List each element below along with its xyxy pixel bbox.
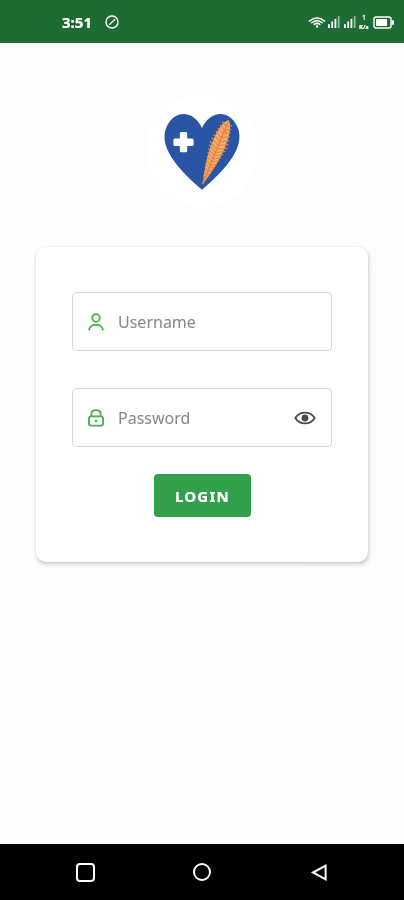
staticText: Username <box>118 311 196 333</box>
button[interactable]: LOGIN <box>154 474 251 517</box>
staticText: 3:51 <box>62 12 92 32</box>
button[interactable]: Show password <box>292 405 318 431</box>
button[interactable]: Recent apps <box>66 853 104 891</box>
button[interactable]: Home <box>183 853 221 891</box>
button[interactable]: Username <box>72 292 332 351</box>
button[interactable]: Password <box>72 388 332 447</box>
staticText: Password <box>118 407 191 429</box>
staticText: K/s <box>359 23 369 31</box>
staticText: LOGIN <box>175 486 230 506</box>
staticText: 1 <box>362 13 367 23</box>
button[interactable]: Back <box>300 853 338 891</box>
